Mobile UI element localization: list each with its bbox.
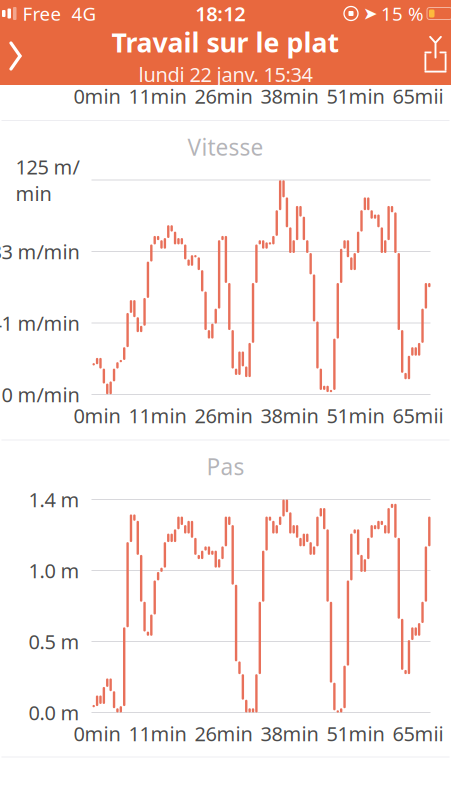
staticText: 11min [128, 83, 186, 109]
staticText: 38min [260, 83, 318, 109]
staticText: 38min [260, 402, 318, 429]
staticText: ➤ [363, 4, 378, 23]
staticText: 15 % [381, 1, 424, 26]
staticText: 65mii [392, 402, 443, 429]
staticText: 125 m/min [15, 153, 79, 206]
staticText: 26min [194, 83, 252, 109]
staticText: 4G [71, 1, 96, 26]
staticText: 0.0 m [28, 699, 79, 726]
staticText: 0min [73, 83, 120, 109]
staticText: 0 m/min [1, 381, 79, 408]
staticText: 1.0 m [28, 557, 79, 584]
staticText: 26min [194, 720, 252, 747]
staticText: 51min [326, 83, 384, 109]
staticText: 11min [128, 402, 186, 429]
staticText: 1.4 m [28, 486, 79, 513]
staticText: 83 m/min [0, 238, 79, 265]
staticText: 0min [73, 720, 120, 747]
button[interactable]: Partager [407, 27, 451, 85]
staticText: lundi 22 janv. 15:34 [138, 61, 312, 87]
staticText: 0min [73, 402, 120, 429]
staticText: 0.5 m [28, 628, 79, 655]
staticText: 38min [260, 720, 318, 747]
staticText: Vitesse [187, 132, 263, 162]
staticText: 41 m/min [0, 310, 79, 336]
staticText: 51min [326, 720, 384, 747]
staticText: 51min [326, 402, 384, 429]
staticText: Pas [206, 451, 244, 481]
staticText: 11min [128, 720, 186, 747]
staticText: 26min [194, 402, 252, 429]
staticText: Travail sur le plat [111, 24, 339, 60]
staticText: Free [22, 1, 61, 26]
staticText: 18:12 [195, 0, 245, 27]
button[interactable]: Retour [0, 27, 43, 85]
staticText: 65mii [392, 83, 443, 109]
staticText: 65mii [392, 720, 443, 747]
